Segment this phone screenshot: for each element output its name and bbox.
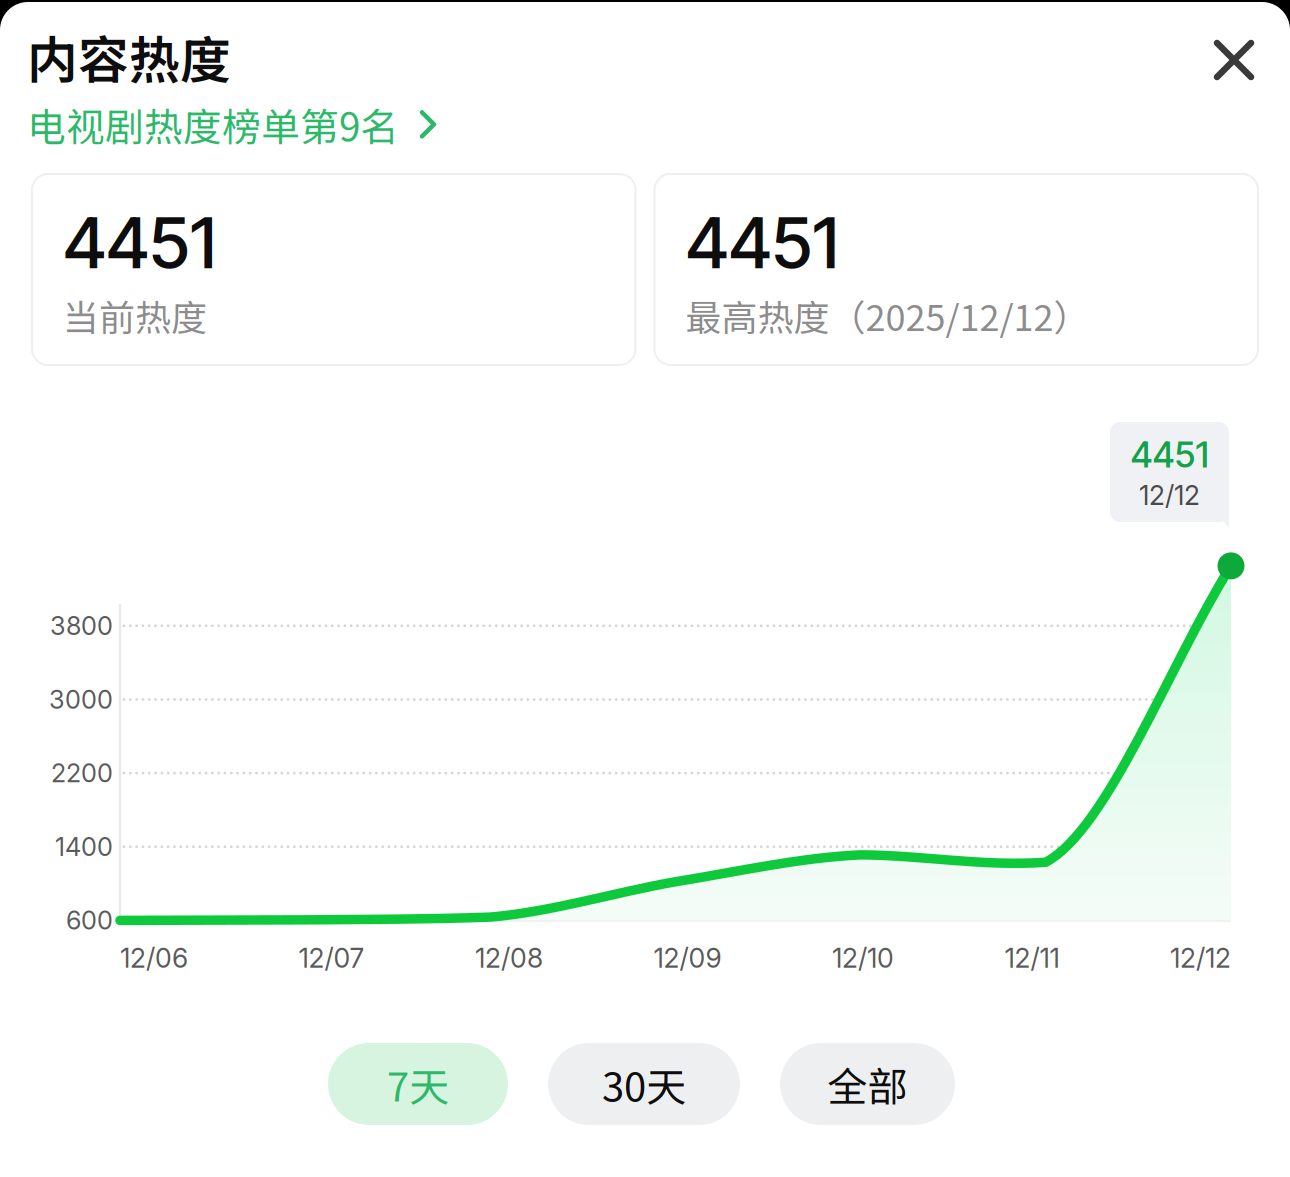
button[interactable]: 7天 (328, 1043, 508, 1125)
staticText: 最高热度（2025/12/12） (685, 289, 1089, 341)
staticText: 1400 (55, 831, 113, 862)
staticText: 4451 (63, 200, 216, 285)
button[interactable]: 全部 (780, 1043, 955, 1125)
staticText: 12/12 (1170, 942, 1231, 974)
staticText: 12/07 (298, 942, 364, 974)
staticText: 30天 (602, 1055, 686, 1113)
staticText: 当前热度 (63, 289, 207, 341)
button[interactable]: 电视剧热度榜单第9名 (27, 96, 437, 152)
staticText: 3000 (49, 684, 113, 715)
staticText: 600 (66, 905, 113, 936)
staticText: 7天 (387, 1055, 449, 1113)
staticText: 4451 (685, 200, 838, 285)
staticText: 电视剧热度榜单第9名 (27, 96, 399, 152)
staticText: 2200 (51, 758, 113, 788)
staticText: 3800 (50, 610, 113, 641)
staticText: 12/10 (832, 942, 894, 974)
button[interactable]: 30天 (548, 1043, 740, 1125)
staticText: 12/12 (1139, 479, 1200, 511)
staticText: 12/11 (1004, 942, 1059, 974)
staticText: 12/09 (653, 942, 721, 974)
staticText: 12/06 (120, 942, 188, 974)
staticText: 内容热度 (27, 20, 231, 93)
staticText: 4451 (1130, 433, 1208, 476)
staticText: 12/08 (475, 942, 543, 974)
button[interactable]: Close (1212, 38, 1256, 82)
staticText: 全部 (827, 1055, 907, 1113)
